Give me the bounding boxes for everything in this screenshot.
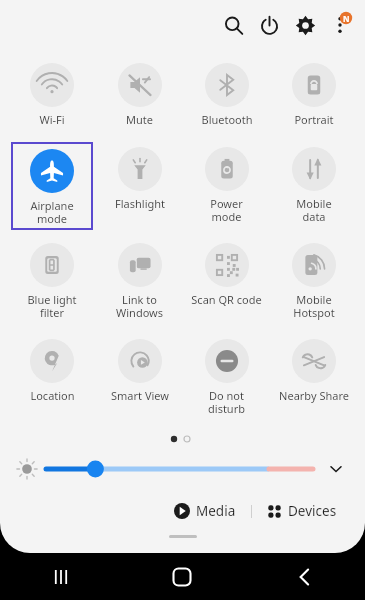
button[interactable]: Airplane mode: [11, 142, 93, 230]
button[interactable]: Wi-Fi: [8, 58, 96, 131]
staticText: Portrait: [294, 112, 334, 127]
button[interactable]: More options: [323, 7, 359, 43]
button[interactable]: Back: [243, 553, 365, 600]
staticText: Airplane mode: [30, 198, 74, 226]
button[interactable]: Do not disturb: [183, 334, 270, 420]
staticText: Flashlight: [115, 196, 165, 211]
staticText: Media: [196, 502, 236, 520]
staticText: Mobile Hotspot: [293, 292, 335, 320]
button[interactable]: Mobile data: [270, 142, 357, 228]
staticText: Blue light filter: [27, 292, 77, 320]
button[interactable]: Portrait: [270, 58, 357, 131]
staticText: Mobile data: [296, 196, 332, 224]
button[interactable]: Flashlight: [96, 142, 183, 215]
button[interactable]: Search: [215, 7, 251, 43]
staticText: Link to Windows: [116, 292, 163, 320]
staticText: Power mode: [210, 196, 243, 224]
staticText: Wi-Fi: [39, 112, 65, 127]
button[interactable]: Link to Windows: [96, 238, 183, 324]
staticText: Do not disturb: [208, 388, 245, 416]
button[interactable]: Mobile Hotspot: [270, 238, 357, 324]
button[interactable]: Media: [168, 498, 242, 524]
staticText: Mute: [126, 112, 153, 127]
button[interactable]: Location: [8, 334, 96, 407]
button[interactable]: Smart View: [96, 334, 183, 407]
button[interactable]: Scan QR code: [183, 238, 270, 311]
staticText: Devices: [288, 502, 337, 520]
button[interactable]: Nearby Share: [270, 334, 357, 407]
button[interactable]: Recent apps: [0, 553, 121, 600]
button[interactable]: Brightness: [46, 456, 313, 482]
button[interactable]: Blue light filter: [8, 238, 96, 324]
staticText: Nearby Share: [279, 388, 349, 403]
button[interactable]: Mute: [96, 58, 183, 131]
button[interactable]: Settings: [287, 7, 323, 43]
staticText: Bluetooth: [201, 112, 253, 127]
button[interactable]: Power mode: [183, 142, 270, 228]
staticText: Smart View: [111, 388, 169, 403]
staticText: N: [343, 13, 350, 24]
button[interactable]: Home: [121, 553, 243, 600]
staticText: Scan QR code: [191, 292, 262, 307]
button[interactable]: Bluetooth: [183, 58, 270, 131]
button[interactable]: Expand brightness settings: [323, 456, 349, 482]
button[interactable]: Power: [251, 7, 287, 43]
staticText: Location: [30, 388, 75, 403]
button[interactable]: Devices: [261, 498, 343, 524]
